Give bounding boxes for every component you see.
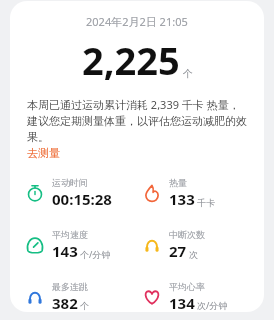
staticText: 平均心率 — [169, 281, 205, 292]
button[interactable]: 平均心率 — [141, 281, 230, 312]
staticText: 2,225 — [82, 34, 180, 86]
button[interactable]: 跳绳 — [24, 281, 91, 312]
button[interactable]: 跳绳 — [141, 229, 207, 261]
staticText: 133 — [169, 189, 195, 209]
staticText: 运动时间 — [52, 177, 88, 188]
staticText: 平均速度 — [52, 229, 88, 240]
button[interactable]: 平均速度 — [24, 229, 113, 261]
staticText: 个/分钟 — [80, 248, 111, 260]
button[interactable]: 运动时间 — [24, 177, 114, 209]
button[interactable]: 热量 — [141, 177, 217, 209]
staticText: 134 — [169, 293, 195, 312]
staticText: 本周已通过运动累计消耗 2,339 千卡 热量，建议您定期测量体重，以评估您运动… — [27, 97, 247, 144]
other: 平均速度 — [26, 236, 44, 254]
staticText: 热量 — [169, 177, 187, 188]
staticText: 143 — [52, 241, 78, 261]
staticText: 00:15:28 — [52, 189, 112, 209]
button[interactable]: 去测量 — [27, 146, 60, 160]
other: 热量 — [143, 184, 161, 202]
staticText: 中断次数 — [169, 229, 205, 240]
staticText: 27 — [169, 241, 187, 261]
other: 跳绳 — [143, 236, 161, 254]
staticText: 个 — [183, 67, 193, 80]
staticText: 千卡 — [197, 197, 215, 208]
staticText: 382 — [52, 293, 78, 312]
other: 运动时间 — [26, 184, 44, 202]
staticText: 最多连跳 — [52, 281, 88, 292]
staticText: 次/分钟 — [197, 299, 228, 311]
staticText: 次 — [189, 249, 198, 260]
staticText: 2024年2月2日 21:05 — [86, 14, 188, 29]
other: 平均心率 — [143, 288, 161, 306]
staticText: 个 — [80, 300, 89, 311]
staticText: 去测量 — [27, 146, 60, 160]
other: 跳绳 — [26, 288, 44, 306]
